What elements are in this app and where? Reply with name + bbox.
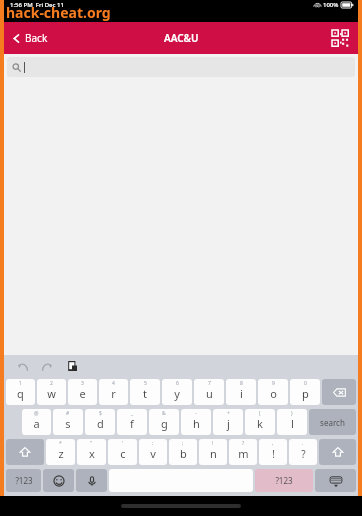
- button[interactable]: !: [199, 439, 227, 465]
- staticText: u: [206, 386, 213, 401]
- staticText: +: [227, 410, 230, 417]
- button[interactable]: ?: [229, 439, 257, 465]
- button[interactable]: -: [181, 409, 211, 435]
- staticText: z: [58, 446, 64, 461]
- staticText: p: [302, 386, 309, 401]
- button[interactable]: 9: [258, 379, 288, 405]
- staticText: y: [174, 386, 180, 401]
- staticText: -: [195, 410, 197, 417]
- button[interactable]: +: [213, 409, 243, 435]
- button[interactable]: #: [53, 409, 83, 435]
- staticText: AAC&U: [164, 31, 199, 45]
- button[interactable]: ;: [169, 439, 197, 465]
- staticText: l: [291, 416, 294, 431]
- button[interactable]: shift: [6, 439, 44, 465]
- button[interactable]: ?123: [255, 469, 313, 492]
- button[interactable]: 7: [194, 379, 224, 405]
- staticText: h: [193, 416, 200, 431]
- button[interactable]: _: [117, 409, 147, 435]
- staticText: o: [270, 386, 277, 401]
- button[interactable]: 5: [130, 379, 160, 405]
- staticText: f: [130, 416, 134, 431]
- button[interactable]: search: [309, 409, 356, 435]
- button[interactable]: 6: [162, 379, 192, 405]
- button[interactable]: backspace: [322, 379, 356, 405]
- staticText: search: [320, 417, 345, 428]
- staticText: *: [59, 440, 62, 447]
- staticText: ;: [182, 440, 184, 447]
- staticText: 9: [272, 380, 275, 387]
- staticText: ': [122, 440, 124, 447]
- button[interactable]: ,: [259, 439, 287, 465]
- button[interactable]: emoji: [43, 469, 74, 492]
- staticText: w: [47, 386, 56, 401]
- button[interactable]: .: [289, 439, 317, 465]
- staticText: 100%: [323, 1, 339, 9]
- staticText: g: [161, 416, 168, 431]
- staticText: m: [238, 446, 249, 461]
- staticText: .: [302, 440, 304, 447]
- button[interactable]: 0: [290, 379, 320, 405]
- button[interactable]: Scan QR code: [323, 25, 358, 52]
- button[interactable]: 4: [99, 379, 128, 405]
- staticText: 3: [81, 380, 84, 387]
- staticText: (: [259, 410, 261, 417]
- button[interactable]: &: [149, 409, 179, 435]
- button[interactable]: Undo: [14, 358, 31, 375]
- staticText: ?: [301, 447, 306, 461]
- staticText: ?: [242, 440, 245, 447]
- button[interactable]: Redo: [39, 358, 56, 375]
- staticText: n: [210, 446, 217, 461]
- button[interactable]: 3: [68, 379, 97, 405]
- button[interactable]: 1: [6, 379, 35, 405]
- staticText: 1:56 PM Fri Dec 11: [10, 1, 64, 9]
- button[interactable]: ): [277, 409, 307, 435]
- button[interactable]: ?123: [6, 469, 41, 492]
- staticText: 0: [304, 380, 307, 387]
- staticText: 7: [208, 380, 211, 387]
- button[interactable]: ': [108, 439, 137, 465]
- staticText: Back: [25, 31, 48, 45]
- staticText: j: [227, 416, 230, 431]
- staticText: $: [99, 410, 102, 417]
- staticText: ?123: [275, 475, 293, 486]
- staticText: e: [79, 386, 86, 401]
- staticText: 6: [176, 380, 179, 387]
- staticText: 2: [50, 380, 53, 387]
- staticText: #: [66, 410, 70, 417]
- staticText: c: [120, 446, 126, 461]
- staticText: ,: [272, 440, 274, 447]
- staticText: 5: [144, 380, 147, 387]
- staticText: _: [131, 410, 134, 417]
- staticText: i: [240, 386, 243, 401]
- staticText: ?123: [15, 475, 33, 486]
- staticText: x: [89, 446, 95, 461]
- staticText: b: [180, 446, 187, 461]
- button[interactable]: (: [245, 409, 275, 435]
- staticText: @: [34, 410, 39, 417]
- button[interactable]: [7, 57, 355, 77]
- button[interactable]: mic: [76, 469, 107, 492]
- button[interactable]: @: [22, 409, 51, 435]
- staticText: t: [143, 386, 147, 401]
- button[interactable]: shift: [319, 439, 356, 465]
- button[interactable]: $: [85, 409, 115, 435]
- button[interactable]: 2: [37, 379, 66, 405]
- staticText: a: [33, 416, 40, 431]
- staticText: v: [150, 446, 156, 461]
- button[interactable]: 8: [226, 379, 256, 405]
- staticText: r: [111, 386, 116, 401]
- staticText: !: [272, 447, 275, 461]
- button[interactable]: Paste: [64, 358, 80, 374]
- staticText: !: [212, 440, 214, 447]
- staticText: d: [97, 416, 104, 431]
- button[interactable]: :: [139, 439, 167, 465]
- staticText: 8: [240, 380, 243, 387]
- button[interactable]: ": [77, 439, 106, 465]
- staticText: k: [257, 416, 263, 431]
- staticText: 4: [112, 380, 115, 387]
- button[interactable]: Back: [4, 25, 56, 51]
- button[interactable]: *: [46, 439, 75, 465]
- button[interactable]: hide: [315, 469, 356, 492]
